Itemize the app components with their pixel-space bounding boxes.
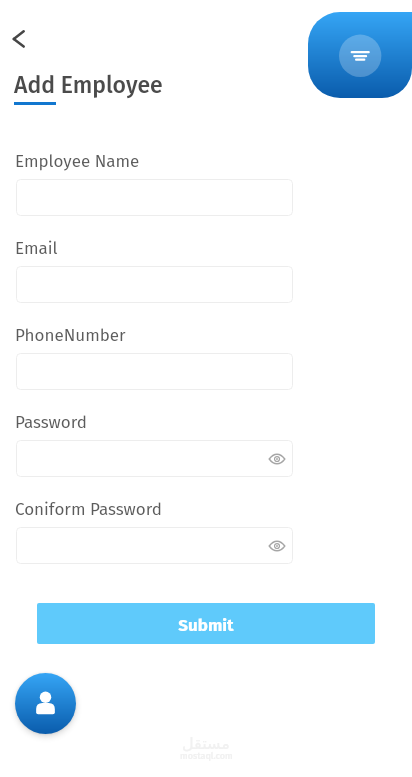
staticText: Email bbox=[15, 238, 58, 258]
staticText: Password bbox=[15, 412, 87, 432]
button[interactable] bbox=[16, 353, 293, 390]
button[interactable]: Filter bbox=[308, 12, 412, 98]
button[interactable]: Back bbox=[0, 19, 38, 57]
button[interactable]: Toggle password visibility bbox=[16, 440, 293, 477]
button[interactable]: Submit bbox=[37, 603, 375, 644]
button[interactable]: Toggle password visibility bbox=[16, 527, 293, 564]
button[interactable] bbox=[16, 266, 293, 303]
staticText: مستقل bbox=[182, 734, 230, 753]
staticText: Submit bbox=[178, 615, 234, 635]
staticText: Employee Name bbox=[15, 151, 140, 171]
button[interactable]: Add employee bbox=[15, 673, 76, 734]
button[interactable] bbox=[16, 179, 293, 216]
staticText: PhoneNumber bbox=[15, 325, 126, 345]
button[interactable]: Toggle password visibility bbox=[265, 534, 289, 558]
staticText: Coniform Password bbox=[15, 499, 162, 519]
button[interactable]: Toggle password visibility bbox=[265, 447, 289, 471]
staticText: Add Employee bbox=[14, 71, 163, 99]
staticText: mostaql.com bbox=[180, 751, 233, 762]
